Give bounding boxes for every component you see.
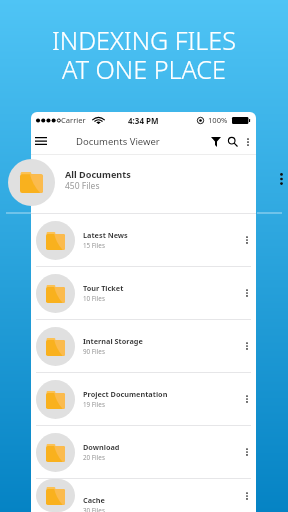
staticText: Cache — [83, 495, 105, 505]
staticText: Carrier — [61, 115, 86, 125]
staticText: 100% — [208, 115, 228, 125]
button[interactable]: More options — [240, 286, 254, 300]
button[interactable]: More options — [240, 489, 254, 503]
button[interactable]: Menu — [32, 132, 50, 150]
button[interactable]: More options — [241, 135, 255, 149]
staticText: Download — [83, 442, 120, 452]
staticText: 19 Files — [83, 400, 105, 409]
button[interactable]: Latest News — [31, 214, 256, 266]
button[interactable]: Cache — [31, 479, 256, 512]
staticText: 450 Files — [65, 180, 100, 192]
button[interactable]: Project Documentation — [31, 373, 256, 425]
staticText: 4:34 PM — [128, 115, 159, 126]
staticText: Internal Storage — [83, 336, 143, 346]
button[interactable]: More options — [240, 392, 254, 406]
staticText: Tour Ticket — [83, 283, 124, 293]
staticText: 20 Files — [83, 453, 105, 462]
button[interactable]: Download — [31, 426, 256, 478]
button[interactable]: More options — [240, 233, 254, 247]
staticText: 10 Files — [83, 294, 105, 303]
button[interactable]: Filter — [207, 133, 224, 150]
staticText: Project Documentation — [83, 389, 168, 399]
staticText: Documents Viewer — [76, 135, 160, 148]
staticText: 15 Files — [83, 241, 105, 250]
button[interactable]: More options — [240, 445, 254, 459]
button[interactable]: Search — [224, 133, 241, 150]
button[interactable]: All Documents — [31, 155, 256, 213]
button[interactable]: Tour Ticket — [31, 267, 256, 319]
staticText: 90 Files — [83, 347, 105, 356]
staticText: Latest News — [83, 230, 128, 240]
button[interactable]: More options — [275, 173, 287, 185]
staticText: INDEXING FILES AT ONE PLACE — [0, 23, 288, 86]
button[interactable] — [8, 159, 55, 206]
button[interactable]: More options — [240, 339, 254, 353]
staticText: All Documents — [65, 168, 131, 180]
staticText: 30 Files — [83, 506, 105, 512]
button[interactable]: Internal Storage — [31, 320, 256, 372]
